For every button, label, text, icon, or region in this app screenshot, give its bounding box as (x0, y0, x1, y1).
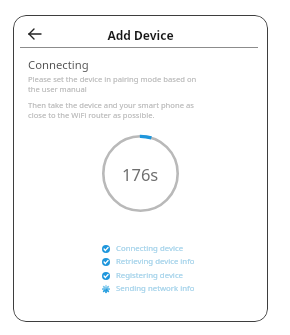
button[interactable]: Connecting device (102, 242, 184, 255)
staticText: Add Device (13, 27, 268, 43)
staticText: Connecting (28, 57, 89, 72)
staticText: Sending network info (116, 283, 195, 294)
staticText: Then take the device and your smart phon… (28, 100, 194, 120)
staticText: 176s (122, 163, 159, 185)
button[interactable]: Retrieving device info (102, 255, 195, 268)
button[interactable]: Back (24, 23, 46, 45)
staticText: Please set the device in pairing mode ba… (28, 74, 197, 94)
staticText: Connecting device (116, 243, 184, 254)
button[interactable]: Sending network info (102, 282, 195, 295)
staticText: Registering device (116, 270, 184, 281)
staticText: Retrieving device info (116, 256, 195, 267)
button[interactable]: Registering device (102, 269, 184, 282)
